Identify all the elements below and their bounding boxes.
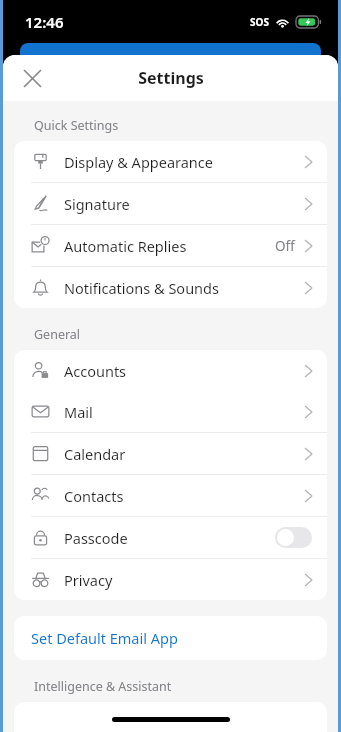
button[interactable]: Automatic Replies (14, 225, 327, 266)
staticText: Passcode (64, 528, 275, 548)
button[interactable]: Notifications & Sounds (14, 267, 327, 308)
staticText: Off (275, 237, 295, 255)
button[interactable]: Set Default Email App (14, 616, 327, 660)
staticText: Accounts (64, 361, 305, 381)
staticText: General (34, 326, 81, 343)
staticText: Contacts (64, 486, 305, 506)
button[interactable]: Passcode toggle, off (275, 527, 312, 548)
staticText: Automatic Replies (64, 236, 275, 256)
staticText: Display & Appearance (64, 152, 305, 172)
staticText: Privacy (64, 570, 305, 590)
staticText: Notifications & Sounds (64, 278, 305, 298)
button[interactable]: Display & Appearance (14, 141, 327, 182)
staticText: Mail (64, 402, 305, 422)
button[interactable]: Close (13, 59, 51, 97)
staticText: Settings (138, 67, 204, 89)
button[interactable]: Contacts (14, 475, 327, 516)
button[interactable]: Signature (14, 183, 327, 224)
staticText: Quick Settings (34, 117, 119, 134)
staticText: 12:46 (25, 12, 64, 32)
button[interactable]: Calendar (14, 433, 327, 474)
staticText: SOS (250, 15, 269, 29)
staticText: Set Default Email App (31, 628, 178, 648)
button[interactable]: Accounts (14, 350, 327, 391)
staticText: Intelligence & Assistant (34, 678, 172, 695)
staticText: Signature (64, 194, 305, 214)
button[interactable]: Privacy (14, 559, 327, 600)
button[interactable]: Mail (14, 391, 327, 432)
button[interactable]: Passcode (14, 517, 327, 558)
staticText: Calendar (64, 444, 305, 464)
